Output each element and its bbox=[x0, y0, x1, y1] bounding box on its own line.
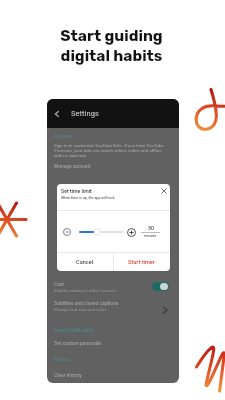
button[interactable]: Close bbox=[160, 187, 168, 195]
staticText: Enable casting to other screens bbox=[54, 288, 116, 293]
staticText: When time is up, the app will lock. bbox=[61, 196, 116, 200]
button[interactable]: Decrease bbox=[63, 228, 71, 236]
staticText: minutes bbox=[144, 234, 157, 238]
staticText: Sign in to customize YouTube Kids. If yo… bbox=[54, 143, 164, 158]
staticText: Set time limit bbox=[61, 188, 92, 194]
button[interactable]: Clear history bbox=[54, 372, 82, 378]
staticText: Cast bbox=[54, 281, 64, 287]
staticText: 30 bbox=[148, 225, 154, 231]
staticText: Account bbox=[54, 133, 73, 139]
button[interactable]: Back bbox=[47, 99, 179, 128]
staticText: Parent verification bbox=[54, 327, 95, 333]
staticText: Set custom passcode bbox=[54, 340, 102, 346]
button[interactable]: Cancel bbox=[57, 253, 113, 271]
staticText: Change text size and color bbox=[54, 307, 106, 312]
button[interactable]: Parent verification bbox=[54, 327, 95, 333]
staticText: Privacy bbox=[54, 356, 71, 362]
staticText: Start guiding digital habits bbox=[0, 27, 224, 65]
button[interactable]: Start timer bbox=[113, 253, 170, 271]
other: Open subtitles settings bbox=[162, 306, 168, 314]
staticText: Clear history bbox=[54, 372, 82, 378]
button[interactable]: Increase bbox=[127, 228, 136, 237]
button[interactable]: Cast bbox=[47, 278, 179, 294]
staticText: Start timer bbox=[128, 259, 155, 266]
button[interactable]: Back bbox=[52, 109, 62, 119]
staticText: Settings bbox=[71, 109, 99, 118]
staticText: Manage account bbox=[54, 163, 91, 169]
button[interactable]: Privacy bbox=[54, 356, 71, 362]
button[interactable]: Cast toggle bbox=[152, 282, 169, 291]
staticText: Subtitles and closed captions bbox=[54, 300, 119, 306]
button[interactable]: Subtitles and closed captions bbox=[47, 298, 179, 314]
staticText: Cancel bbox=[76, 259, 94, 266]
button[interactable]: Set custom passcode bbox=[54, 340, 102, 346]
